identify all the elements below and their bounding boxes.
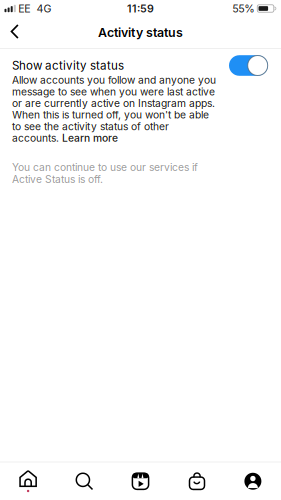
staticText: Show activity status xyxy=(12,58,124,72)
staticText: Allow accounts you follow and anyone you… xyxy=(12,74,216,144)
button[interactable]: Show activity status xyxy=(229,55,268,76)
staticText: EE xyxy=(18,2,30,15)
button[interactable]: Search xyxy=(56,462,112,500)
staticText: You can continue to use our services if … xyxy=(12,161,198,185)
staticText: 4G xyxy=(36,2,51,15)
button[interactable]: Profile xyxy=(225,462,281,500)
staticText: 55% xyxy=(232,2,254,15)
button[interactable]: Reels xyxy=(112,462,169,500)
button[interactable]: Home xyxy=(0,462,56,500)
staticText: 11:59 xyxy=(127,2,154,15)
button[interactable]: Shop xyxy=(169,462,225,500)
staticText: Activity status xyxy=(98,25,183,40)
button[interactable]: Back xyxy=(0,20,31,45)
